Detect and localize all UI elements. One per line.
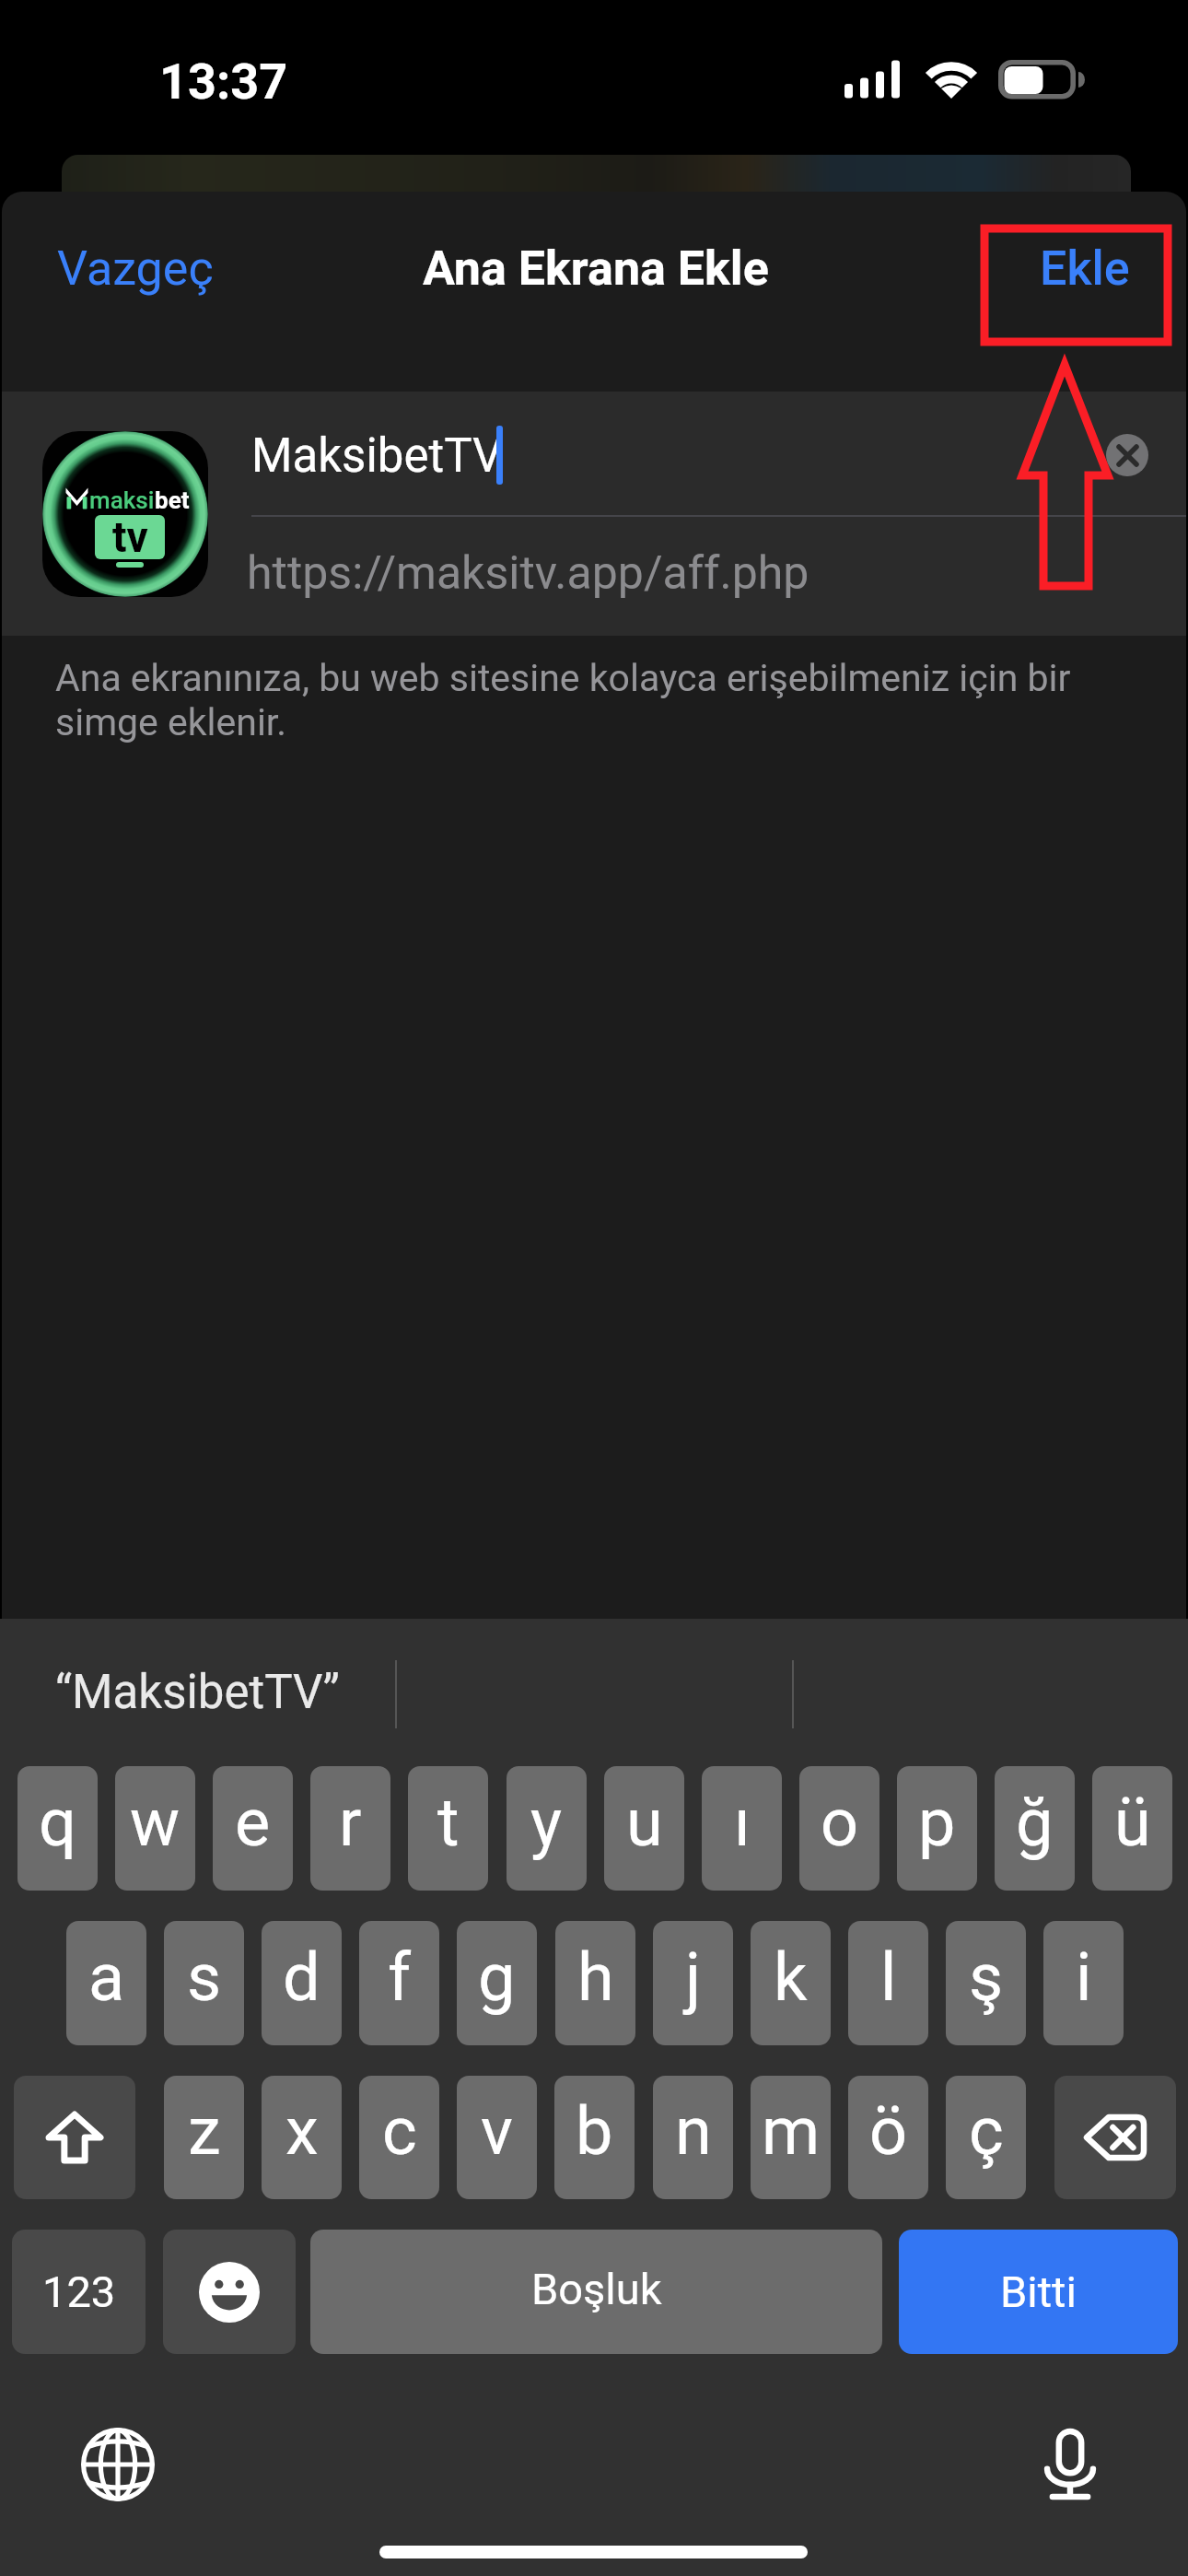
button[interactable]: h	[555, 1921, 635, 2045]
button[interactable]: j	[653, 1921, 733, 2045]
staticText: ı	[734, 1784, 751, 1861]
button[interactable]: b	[554, 2076, 635, 2199]
button[interactable]: e	[213, 1766, 293, 1891]
button[interactable]: Shift	[14, 2076, 135, 2199]
button[interactable]: n	[653, 2076, 733, 2199]
staticText: i	[1076, 1938, 1092, 2016]
button[interactable]: p	[897, 1766, 977, 1891]
staticText: s	[187, 1938, 222, 2016]
button[interactable]: r	[310, 1766, 390, 1891]
staticText: Boşluk	[531, 2264, 662, 2314]
staticText: Ekle	[1040, 240, 1130, 297]
button[interactable]: v	[457, 2076, 537, 2199]
button[interactable]: ş	[946, 1921, 1026, 2045]
staticText: ğ	[1016, 1784, 1054, 1861]
staticText: q	[39, 1784, 76, 1861]
staticText: tv	[112, 515, 148, 556]
staticText: k	[774, 1938, 808, 2016]
staticText: Vazgeç	[57, 240, 214, 297]
staticText: a	[88, 1938, 125, 2016]
button[interactable]: 123	[12, 2230, 146, 2354]
staticText: x	[285, 2092, 319, 2170]
staticText: l	[880, 1938, 897, 2016]
staticText: maksi	[89, 486, 155, 514]
staticText: t	[437, 1784, 460, 1861]
button[interactable]: y	[507, 1766, 587, 1891]
staticText: MaksibetTV	[251, 428, 503, 484]
button[interactable]: s	[164, 1921, 244, 2045]
staticText: 123	[42, 2266, 116, 2317]
staticText: e	[235, 1784, 271, 1861]
button[interactable]: ğ	[995, 1766, 1075, 1891]
staticText: ö	[869, 2092, 908, 2170]
button[interactable]: t	[408, 1766, 488, 1891]
staticText: ş	[969, 1938, 1004, 2016]
button[interactable]: Vazgeç	[57, 240, 214, 297]
button[interactable]: i	[1043, 1921, 1124, 2045]
staticText: Ana Ekrana Ekle	[423, 240, 769, 297]
button[interactable]: f	[359, 1921, 439, 2045]
staticText: m	[762, 2092, 821, 2170]
staticText: o	[821, 1784, 859, 1861]
staticText: ç	[969, 2092, 1004, 2170]
staticText: v	[481, 2092, 513, 2170]
button[interactable]: d	[262, 1921, 342, 2045]
button[interactable]: o	[799, 1766, 879, 1891]
staticText: ü	[1114, 1784, 1151, 1861]
button[interactable]: ö	[848, 2076, 928, 2199]
button[interactable]: ü	[1092, 1766, 1172, 1891]
staticText: d	[283, 1938, 320, 2016]
button[interactable]: Boşluk	[310, 2230, 882, 2354]
staticText: “MaksibetTV”	[55, 1665, 340, 1720]
staticText: f	[388, 1938, 412, 2016]
staticText: 13:37	[159, 53, 288, 111]
staticText: u	[626, 1784, 663, 1861]
staticText: Ana ekranınıza, bu web sitesine kolayca …	[55, 656, 1091, 744]
staticText: y	[530, 1784, 563, 1861]
staticText: r	[339, 1784, 362, 1861]
button[interactable]: q	[17, 1766, 98, 1891]
button[interactable]: m	[751, 2076, 831, 2199]
staticText: w	[130, 1784, 181, 1861]
staticText: https://maksitv.app/aff.php	[247, 546, 809, 601]
button[interactable]: a	[66, 1921, 146, 2045]
staticText: n	[675, 2092, 712, 2170]
button[interactable]: ç	[946, 2076, 1026, 2199]
button[interactable]: Change keyboard	[81, 2428, 155, 2501]
button[interactable]: u	[604, 1766, 684, 1891]
button[interactable]: Backspace	[1054, 2076, 1176, 2199]
button[interactable]: Dictation	[1033, 2428, 1107, 2501]
button[interactable]: z	[164, 2076, 244, 2199]
staticText: bet	[155, 486, 190, 514]
button[interactable]: Bitti	[899, 2230, 1178, 2354]
button[interactable]: k	[751, 1921, 831, 2045]
staticText: z	[188, 2092, 221, 2170]
staticText: c	[382, 2092, 417, 2170]
button[interactable]: c	[359, 2076, 439, 2199]
button[interactable]: w	[115, 1766, 195, 1891]
button[interactable]: Emoji	[163, 2230, 296, 2354]
button[interactable]: Ekle	[1040, 240, 1130, 297]
button[interactable]: ı	[702, 1766, 782, 1891]
staticText: b	[576, 2092, 613, 2170]
button[interactable]: Clear text	[1106, 434, 1148, 476]
staticText: g	[478, 1938, 516, 2016]
button[interactable]: g	[457, 1921, 537, 2045]
staticText: h	[577, 1938, 614, 2016]
button[interactable]: l	[848, 1921, 928, 2045]
staticText: Bitti	[1000, 2266, 1077, 2317]
staticText: p	[918, 1784, 956, 1861]
button[interactable]: x	[262, 2076, 342, 2199]
staticText: j	[685, 1938, 702, 2016]
